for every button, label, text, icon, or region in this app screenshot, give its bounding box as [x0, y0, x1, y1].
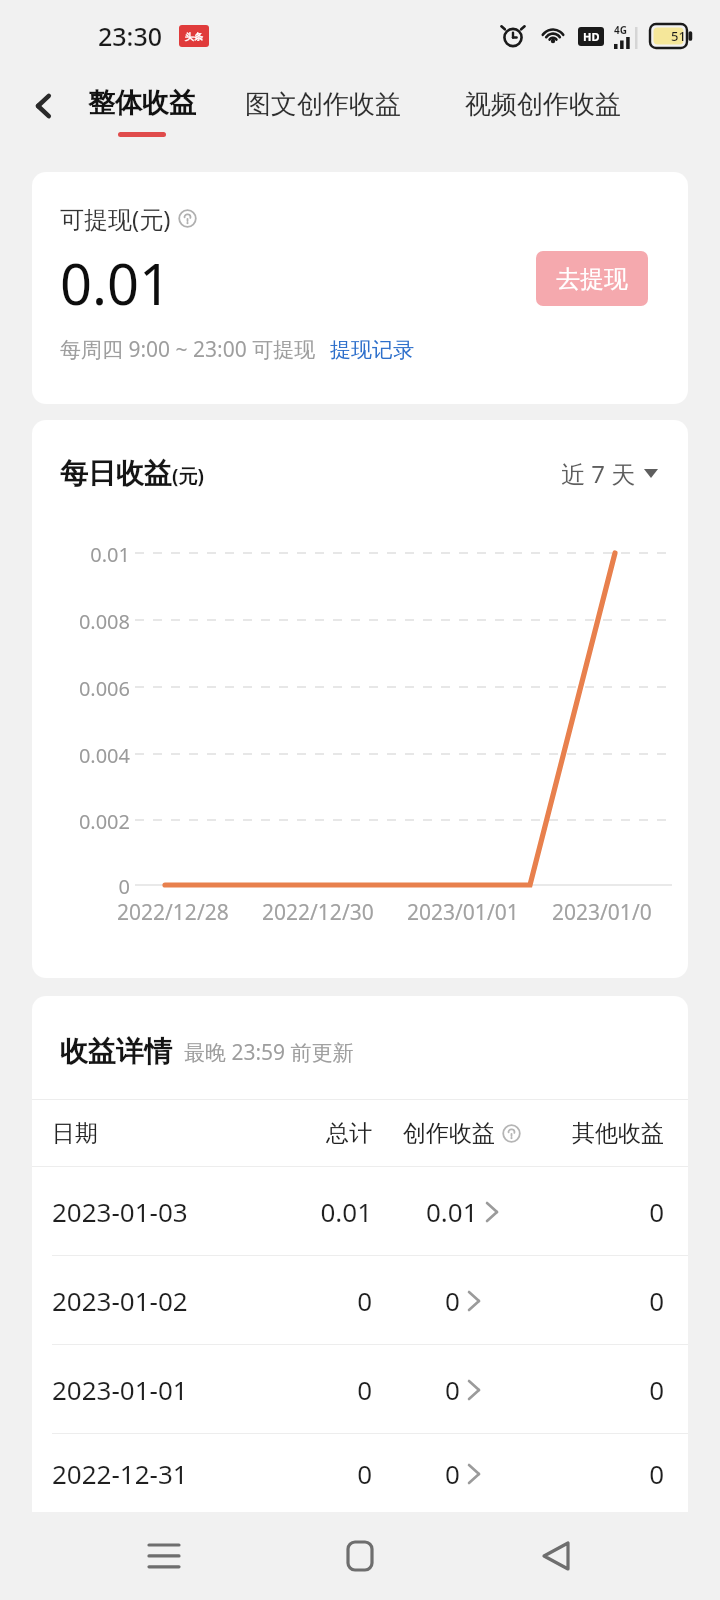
button[interactable]: 2023-01-01 — [32, 1345, 688, 1433]
staticText: 0.01 — [40, 541, 130, 568]
staticText: 0.01 — [426, 1194, 478, 1229]
staticText: 0.002 — [40, 808, 130, 835]
staticText: 4G — [614, 23, 627, 37]
staticText: 可提现(元) — [60, 202, 171, 235]
button[interactable]: 2023-01-02 — [32, 1256, 688, 1344]
staticText: 头条 — [185, 31, 203, 42]
staticText: 最晚 23:59 前更新 — [184, 1038, 354, 1067]
button[interactable]: Back — [524, 1524, 588, 1588]
staticText: 0 — [242, 1372, 372, 1407]
staticText: 0 — [445, 1283, 460, 1318]
staticText: 51 — [671, 27, 686, 45]
staticText: 0.008 — [40, 608, 130, 635]
button[interactable]: 提现记录 — [330, 337, 414, 363]
staticText: HD — [583, 29, 600, 44]
button[interactable]: 去提现 — [536, 251, 648, 306]
staticText: 0.01 — [60, 245, 172, 321]
staticText: 0 — [552, 1194, 664, 1229]
staticText: 收益详情 — [60, 1034, 172, 1069]
staticText: 整体收益 — [88, 86, 196, 120]
staticText: 总计 — [242, 1119, 372, 1148]
staticText: 0 — [242, 1283, 372, 1318]
staticText: 其他收益 — [552, 1119, 664, 1148]
staticText: 0 — [445, 1456, 460, 1491]
staticText: 每日收益 — [60, 456, 172, 491]
staticText: 去提现 — [556, 264, 628, 294]
button[interactable]: 2023-01-03 — [32, 1167, 688, 1255]
staticText: 2023/01/01 — [407, 898, 519, 927]
staticText: 0 — [40, 873, 130, 900]
staticText: 0 — [242, 1456, 372, 1491]
staticText: 0 — [445, 1372, 460, 1407]
button[interactable]: Back — [18, 80, 70, 132]
staticText: 2022-12-31 — [52, 1456, 242, 1491]
staticText: 0 — [552, 1372, 664, 1407]
staticText: 0 — [552, 1283, 664, 1318]
staticText: 创作收益 — [403, 1119, 495, 1148]
staticText: 2023-01-02 — [52, 1283, 242, 1318]
button[interactable]: Home — [328, 1524, 392, 1588]
staticText: 2023/01/0 — [552, 898, 652, 927]
staticText: 23:30 — [98, 19, 163, 53]
button[interactable]: 视频创作收益 — [465, 88, 621, 121]
staticText: 0.006 — [40, 675, 130, 702]
button[interactable]: 整体收益 — [88, 86, 196, 137]
button[interactable]: 图文创作收益 — [245, 88, 401, 121]
staticText: 2023-01-01 — [52, 1372, 242, 1407]
staticText: 日期 — [52, 1119, 242, 1148]
staticText: 2023-01-03 — [52, 1194, 242, 1229]
staticText: 0.01 — [242, 1194, 372, 1229]
staticText: 近 7 天 — [561, 457, 636, 490]
staticText: 0.004 — [40, 742, 130, 769]
staticText: 2022/12/28 — [117, 898, 229, 927]
button[interactable]: 近 7 天 — [561, 457, 658, 490]
staticText: (元) — [172, 463, 204, 489]
staticText: 0 — [552, 1456, 664, 1491]
button[interactable]: Help — [178, 209, 197, 228]
staticText: 2022/12/30 — [262, 898, 374, 927]
staticText: 每周四 9:00 ~ 23:00 可提现 — [60, 335, 316, 364]
button[interactable]: Recents — [132, 1524, 196, 1588]
button[interactable]: 2022-12-31 — [32, 1434, 688, 1512]
